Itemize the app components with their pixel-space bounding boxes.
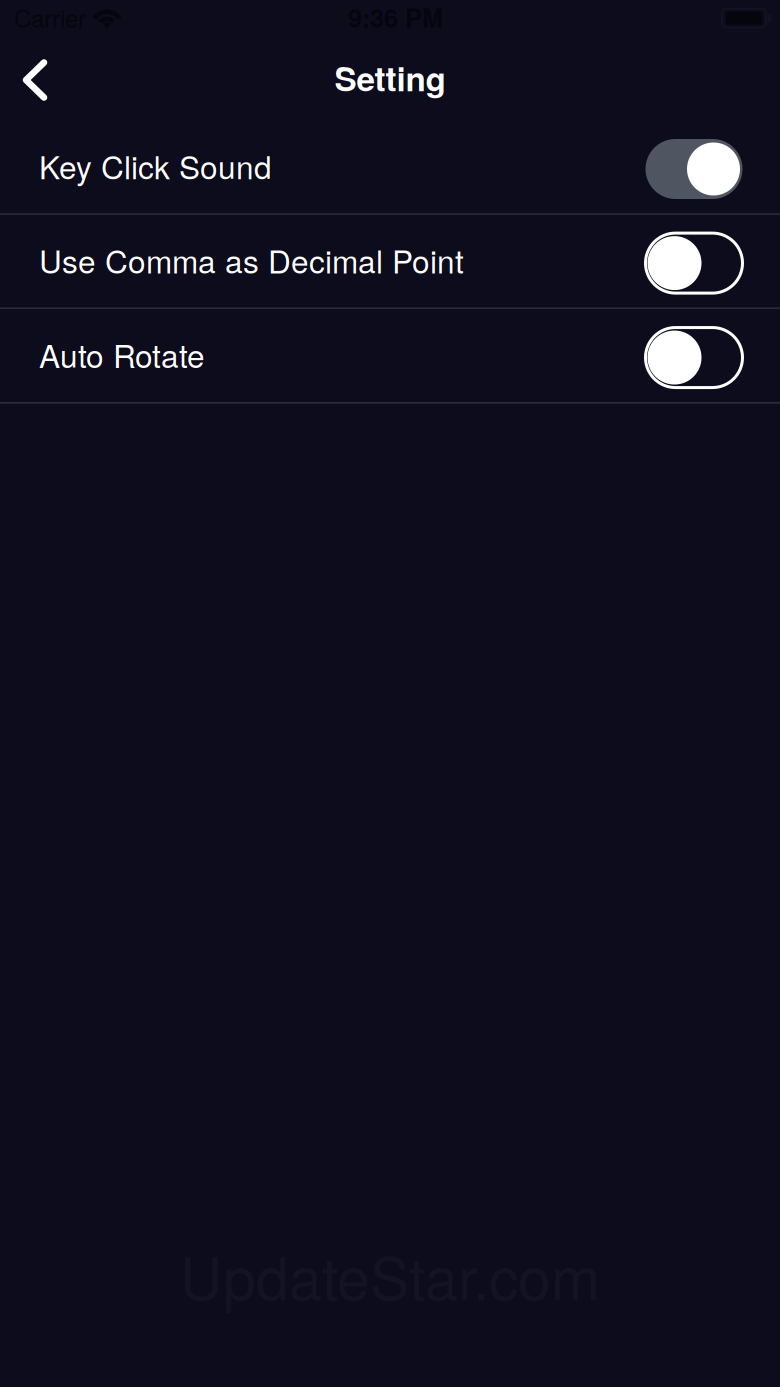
staticText: Auto Rotate [39, 332, 205, 377]
staticText: Carrier [14, 0, 86, 34]
staticText: Use Comma as Decimal Point [39, 237, 464, 282]
button[interactable]: Use Comma as Decimal Point [0, 214, 780, 308]
staticText: Key Click Sound [39, 143, 272, 188]
staticText: 9:36 PM [348, 0, 443, 35]
staticText: Setting [334, 54, 445, 101]
button[interactable]: Key Click Sound [0, 120, 780, 214]
button[interactable]: Back [0, 43, 70, 117]
button[interactable]: Auto Rotate [0, 308, 780, 403]
